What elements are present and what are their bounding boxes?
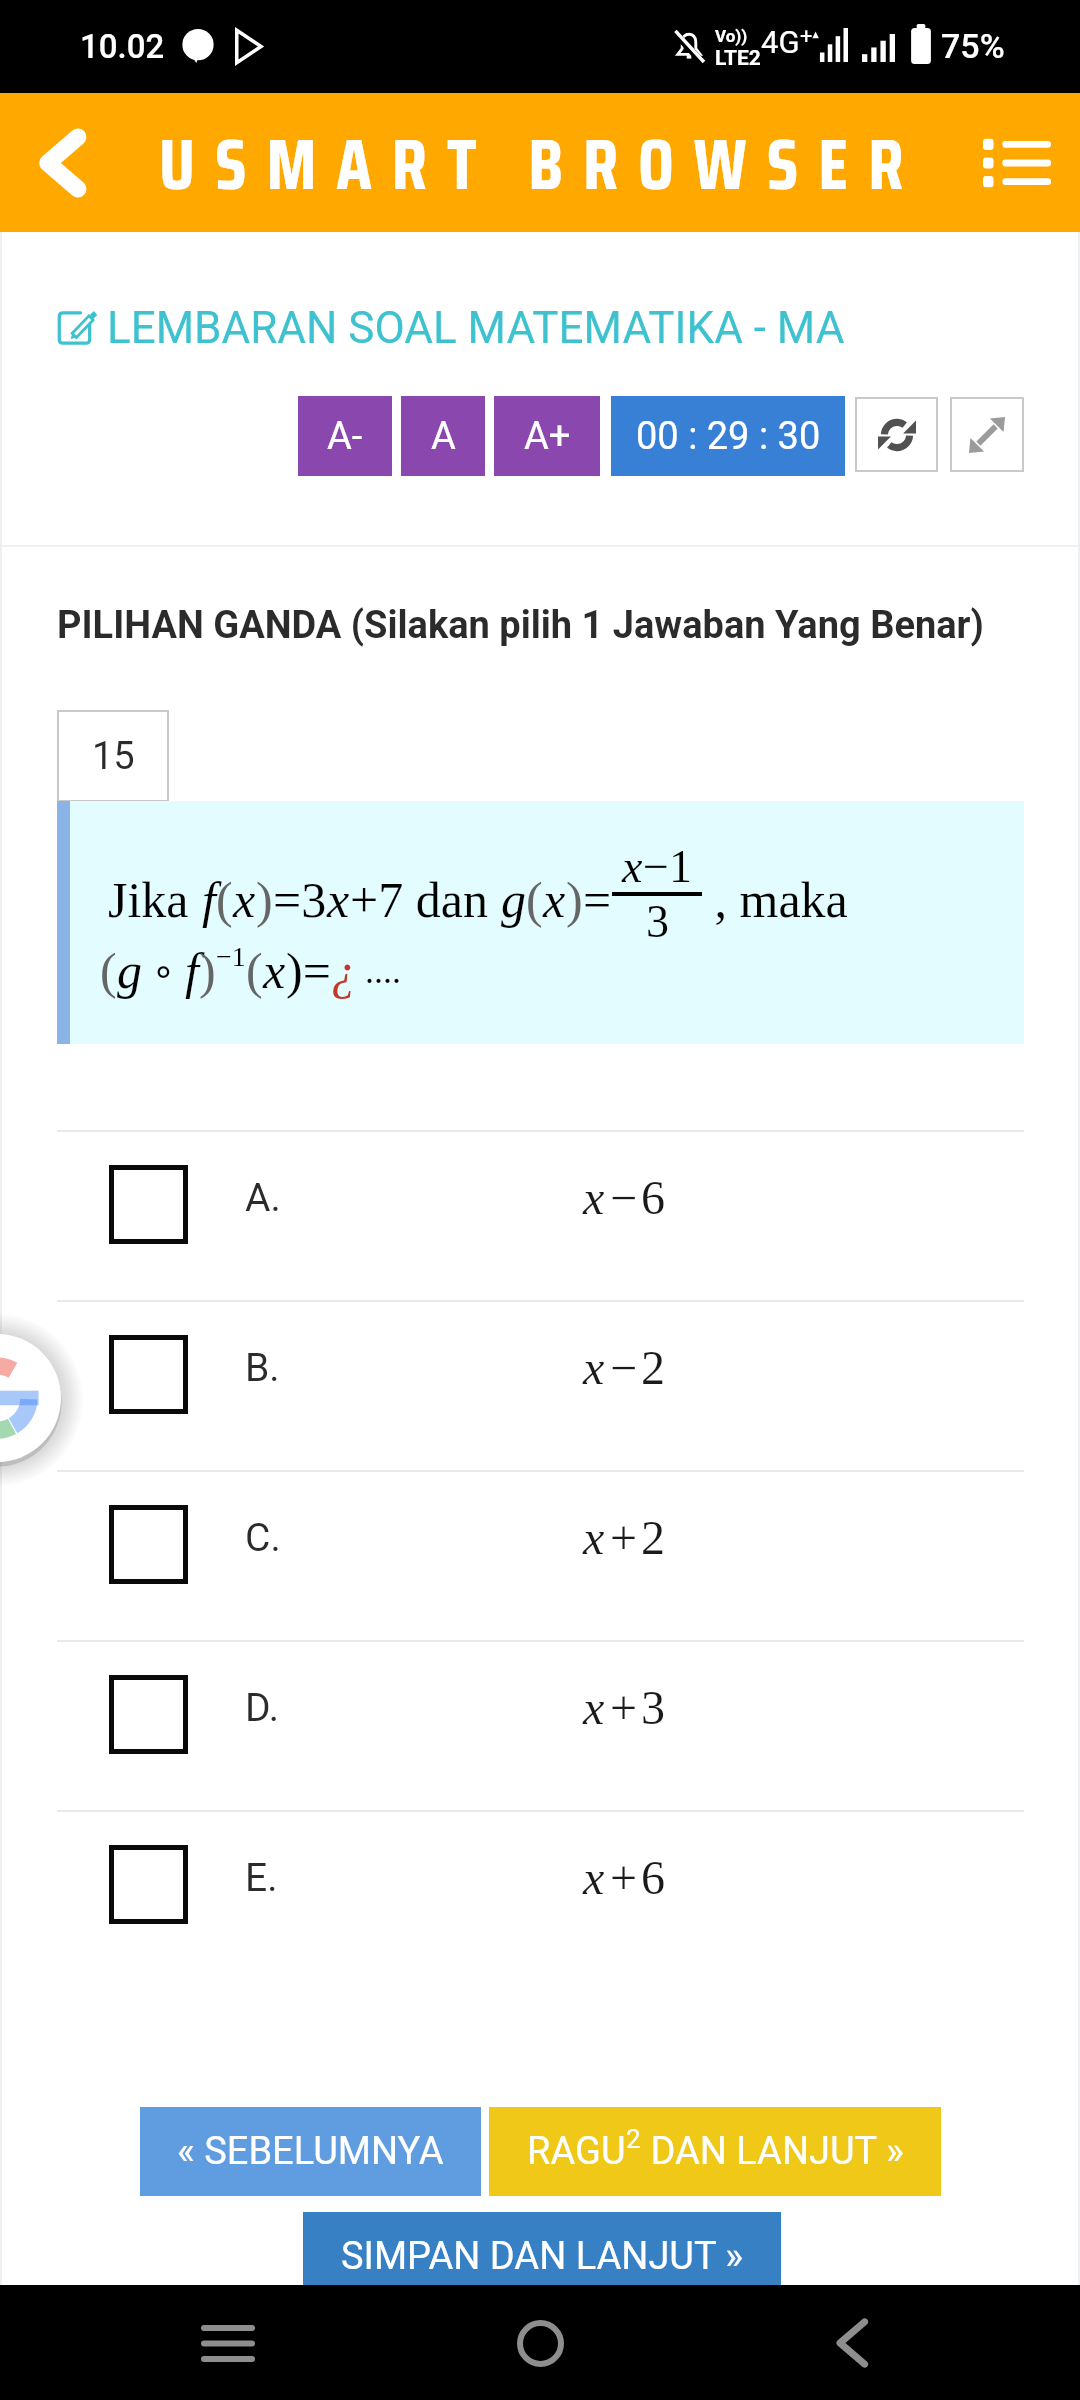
button[interactable]: A <box>401 396 485 476</box>
button[interactable]: Refresh <box>855 397 938 472</box>
staticText: − <box>610 1171 638 1224</box>
staticText: g <box>501 872 526 927</box>
button[interactable]: Menu <box>974 120 1060 206</box>
staticText: x <box>233 872 256 927</box>
staticText: x <box>583 1341 605 1394</box>
staticText: x <box>583 1851 605 1904</box>
staticText: B. <box>245 1345 280 1391</box>
staticText: RAGU <box>527 2129 626 2174</box>
staticText: 6 <box>641 1171 665 1224</box>
staticText: 2 <box>641 1341 665 1394</box>
button[interactable]: Back <box>22 123 102 203</box>
staticText: A- <box>327 414 363 459</box>
staticText: ( <box>526 872 543 927</box>
staticText: ¿ <box>331 943 356 998</box>
button[interactable]: RAGU <box>489 2107 941 2196</box>
button[interactable]: SIMPAN DAN LANJUT » <box>303 2212 781 2301</box>
button[interactable]: Fullscreen <box>950 397 1024 472</box>
staticText: 15 <box>92 734 135 779</box>
button[interactable]: 00 : 29 : 30 <box>611 396 845 476</box>
staticText: −1 <box>216 941 246 972</box>
staticText: x <box>583 1171 605 1224</box>
staticText: LTE2 <box>715 46 761 71</box>
staticText: − <box>610 1341 638 1394</box>
staticText: ) <box>199 943 216 998</box>
staticText: )= <box>286 943 331 998</box>
staticText: 2 <box>641 1511 665 1564</box>
staticText: x <box>583 1681 605 1734</box>
staticText: C. <box>245 1515 281 1561</box>
staticText: 6 <box>641 1851 665 1904</box>
button[interactable]: A- <box>298 396 392 476</box>
staticText: x <box>583 1511 605 1564</box>
button[interactable]: B. <box>0 1302 1080 1470</box>
staticText: +7 dan <box>350 872 501 927</box>
button[interactable]: Google Assistant <box>0 1314 81 1482</box>
button[interactable]: C. <box>0 1472 1080 1640</box>
staticText: ∘ <box>142 949 185 993</box>
staticText: 2 <box>626 2124 641 2154</box>
staticText: Jika <box>108 872 202 927</box>
button[interactable]: A. <box>0 1132 1080 1300</box>
staticText: DAN LANJUT » <box>641 2129 904 2174</box>
staticText: f <box>202 872 216 927</box>
staticText: f <box>185 943 199 998</box>
staticText: PILIHAN GANDA (Silakan pilih 1 Jawaban Y… <box>57 603 984 648</box>
staticText: , maka <box>702 872 848 927</box>
staticText: ) <box>566 872 583 927</box>
staticText: A+ <box>524 414 571 459</box>
staticText: + <box>610 1681 638 1734</box>
staticText: « SEBELUMNYA <box>177 2129 444 2174</box>
staticText: A. <box>245 1175 281 1221</box>
staticText: x <box>622 841 643 892</box>
staticText: x <box>263 943 286 998</box>
staticText: −1 <box>643 841 692 892</box>
staticText: =3 <box>273 872 327 927</box>
button[interactable]: Recent apps <box>188 2303 268 2383</box>
button[interactable]: D. <box>0 1642 1080 1810</box>
staticText: 10.02 <box>80 27 165 66</box>
staticText: x <box>543 872 566 927</box>
button[interactable]: A+ <box>494 396 600 476</box>
staticText: LEMBARAN SOAL MATEMATIKA - MA <box>107 302 845 354</box>
staticText: 00 : 29 : 30 <box>636 414 821 459</box>
staticText: A <box>431 414 456 459</box>
staticText: ( <box>100 943 117 998</box>
button[interactable]: Home <box>500 2303 580 2383</box>
staticText: = <box>583 872 612 927</box>
button[interactable]: « SEBELUMNYA <box>140 2107 481 2196</box>
staticText: ) <box>256 872 273 927</box>
staticText: E. <box>245 1855 278 1901</box>
staticText: + <box>610 1511 638 1564</box>
staticText: .... <box>356 951 401 991</box>
button[interactable]: Back <box>812 2303 892 2383</box>
staticText: x <box>327 872 350 927</box>
staticText: ( <box>216 872 233 927</box>
staticText: 4G <box>761 24 800 60</box>
staticText: Vo)) <box>715 26 748 46</box>
staticText: ( <box>246 943 263 998</box>
staticText: 3 <box>646 896 669 947</box>
staticText: 3 <box>641 1681 665 1734</box>
staticText: D. <box>245 1685 279 1731</box>
staticText: + <box>800 24 813 50</box>
button[interactable]: E. <box>0 1812 1080 1980</box>
staticText: USMART BROWSER <box>159 108 924 220</box>
staticText: + <box>610 1851 638 1904</box>
staticText: g <box>117 943 142 998</box>
staticText: SIMPAN DAN LANJUT » <box>341 2234 744 2279</box>
staticText: 75% <box>941 26 1005 66</box>
